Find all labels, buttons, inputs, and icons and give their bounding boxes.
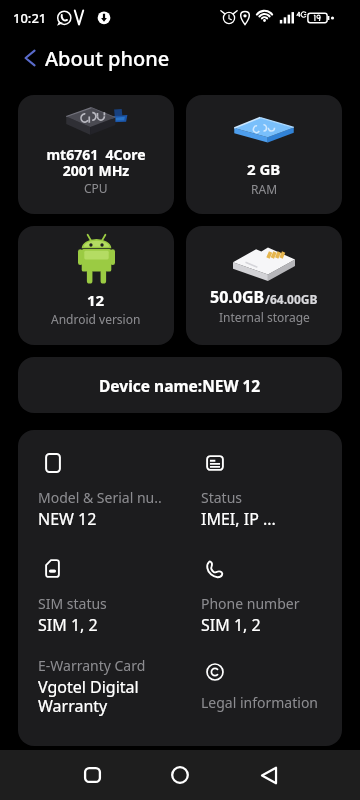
staticText: Phone number	[201, 594, 300, 613]
staticText: 50.0GB	[210, 286, 265, 308]
button[interactable]: Back	[234, 750, 304, 800]
staticText: 2 GB	[247, 159, 281, 179]
button[interactable]: Device name:NEW 12	[18, 357, 342, 413]
staticText: mt6761 4Core 2001 MHz	[46, 145, 146, 180]
staticText: RAM	[251, 181, 278, 197]
staticText: Status	[201, 488, 243, 507]
staticText: Device name:NEW 12	[99, 375, 261, 396]
staticText: 10:21	[13, 9, 47, 27]
button[interactable]: Model & Serial nu..	[38, 453, 188, 530]
button[interactable]: Recents	[57, 750, 127, 800]
staticText: 12	[87, 290, 105, 310]
staticText: Vgotel Digital Warranty	[38, 676, 139, 717]
staticText: About phone	[45, 45, 170, 72]
button[interactable]: 2 GB	[186, 95, 342, 214]
staticText: E-Warranty Card	[38, 656, 146, 675]
staticText: Android version	[51, 311, 141, 327]
button[interactable]: Phone number	[201, 559, 342, 636]
button[interactable]: 50.0GB	[186, 226, 342, 345]
staticText: SIM 1, 2	[201, 614, 261, 636]
staticText: /64.00GB	[265, 291, 318, 307]
staticText: CPU	[84, 180, 108, 196]
staticText: SIM status	[38, 594, 107, 613]
staticText: Model & Serial nu..	[38, 488, 162, 507]
staticText: SIM 1, 2	[38, 614, 98, 636]
button[interactable]: E-Warranty Card	[38, 656, 198, 717]
button[interactable]: Status	[201, 453, 342, 530]
button[interactable]: mt6761 4Core 2001 MHz	[18, 95, 174, 214]
staticText: Legal information	[201, 693, 319, 712]
staticText: Internal storage	[219, 309, 310, 325]
button[interactable]: SIM status	[38, 559, 188, 636]
button[interactable]: 12	[18, 226, 174, 345]
button[interactable]: Back	[8, 36, 52, 80]
staticText: NEW 12	[38, 508, 97, 530]
staticText: IMEI, IP ...	[201, 508, 276, 530]
button[interactable]: Home	[145, 750, 215, 800]
button[interactable]: Legal information	[201, 663, 342, 712]
